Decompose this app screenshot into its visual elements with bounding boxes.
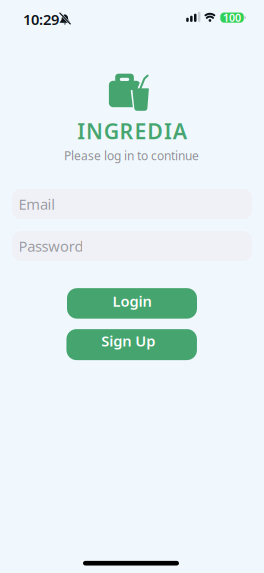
staticText: Please log in to continue (64, 148, 199, 163)
staticText: INGREDIA (77, 117, 187, 145)
staticText: Sign Up (101, 331, 155, 351)
staticText: Login (112, 291, 151, 311)
button[interactable]: Login (67, 288, 197, 319)
button[interactable]: Email (12, 189, 252, 219)
staticText: Email (18, 194, 55, 214)
staticText: 100 (223, 11, 241, 25)
staticText: 10:29 (23, 10, 59, 29)
button[interactable]: Sign Up (66, 329, 197, 360)
staticText: Password (18, 236, 83, 256)
button[interactable]: Password (12, 231, 252, 261)
